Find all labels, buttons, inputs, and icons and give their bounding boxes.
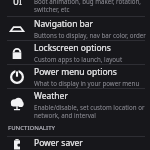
button[interactable]: Navigation bar (0, 17, 150, 40)
staticText: Navigation bar (34, 18, 94, 30)
staticText: FUNCTIONALITY (8, 124, 56, 132)
button[interactable]: Power saver (0, 137, 150, 150)
staticText: What to display in your power menu (34, 79, 140, 87)
other: Navigation bar (0, 17, 34, 40)
other: Lockscreen options (0, 41, 34, 64)
staticText: Power saver (34, 137, 83, 149)
staticText: UI (13, 0, 22, 7)
staticText: Enable/disable, set custom location or (34, 103, 145, 111)
button[interactable]: Lockscreen options (0, 41, 150, 64)
staticText: switcher, etc (34, 5, 70, 13)
staticText: Weather (34, 90, 68, 102)
other: Weather (0, 89, 34, 119)
staticText: network, and interval (34, 111, 96, 119)
button[interactable]: Power menu options (0, 65, 150, 88)
button[interactable]: Weather (0, 89, 150, 119)
button[interactable]: UI (0, 0, 150, 16)
staticText: Boot animation, bug maker, rotation, IME (34, 0, 145, 5)
staticText: Custom apps to launch, layout (34, 55, 123, 63)
staticText: Power menu options (34, 66, 117, 78)
other: Power saver (0, 137, 34, 150)
staticText: Lockscreen options (34, 42, 111, 54)
staticText: Buttons to display, nav bar color, order (34, 31, 146, 39)
other: Power menu options (0, 65, 34, 88)
